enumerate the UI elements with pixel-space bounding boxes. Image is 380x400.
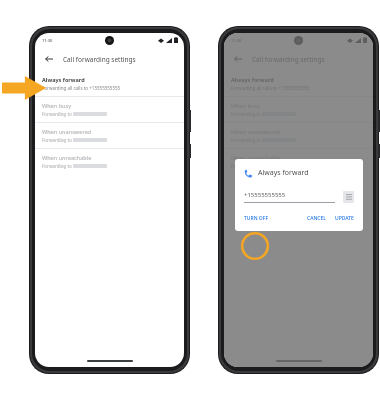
staticText: Always forward [42, 76, 85, 83]
button[interactable]: Always forward [35, 71, 184, 96]
button[interactable]: Back [231, 52, 245, 66]
staticText: When unreachable [42, 154, 92, 161]
button[interactable]: CANCEL [307, 215, 326, 222]
button[interactable]: TURN OFF [244, 215, 269, 222]
staticText: Always forward [231, 76, 274, 83]
staticText: When unreachable [231, 154, 281, 161]
staticText: +15555555555 [244, 191, 286, 199]
staticText: When busy [42, 102, 72, 109]
staticText: Forwarding to [42, 111, 73, 117]
staticText: Forwarding to [231, 111, 262, 117]
button[interactable]: Choose contact [343, 191, 354, 203]
button[interactable]: When unanswered [35, 123, 184, 148]
staticText: Always forward [258, 168, 309, 178]
staticText: Call forwarding settings [252, 55, 325, 64]
button[interactable]: When unreachable [224, 149, 373, 174]
button[interactable]: When busy [35, 97, 184, 122]
staticText: Forwarding all calls to +15555555555 [42, 85, 121, 91]
staticText: 11:30 [42, 38, 53, 43]
staticText: When unanswered [231, 128, 281, 135]
staticText: Forwarding to [231, 163, 262, 169]
button[interactable]: Back [42, 52, 56, 66]
staticText: Forwarding to [42, 137, 73, 143]
staticText: When busy [231, 102, 261, 109]
staticText: When unanswered [42, 128, 92, 135]
button[interactable]: Always forward [224, 71, 373, 96]
button[interactable]: When unreachable [35, 149, 184, 174]
staticText: Call forwarding settings [63, 55, 136, 64]
button[interactable]: UPDATE [335, 215, 354, 222]
staticText: Forwarding to [231, 137, 262, 143]
staticText: Forwarding all calls to +15555555555 [231, 85, 310, 91]
staticText: 11:30 [231, 38, 242, 43]
staticText: Forwarding to [42, 163, 73, 169]
